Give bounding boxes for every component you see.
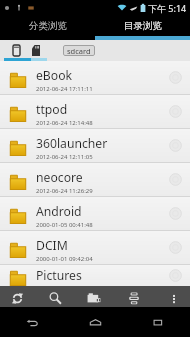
staticText: 2012-06-24 12:11:05 [36,153,93,161]
staticText: 2012-06-24 17:11:11 [36,85,93,93]
staticText: 2000-01-01 09:42:04 [36,255,93,263]
staticText: DCIM [36,237,68,254]
button[interactable]: SD card [27,42,44,59]
staticText: 2000-01-01 09:00:00 [36,285,93,288]
button[interactable]: 目录浏览 [95,16,190,36]
button[interactable]: More options [155,286,190,307]
staticText: ttpod [36,101,68,118]
button[interactable]: 分类浏览 [0,16,95,36]
button[interactable]: Pictures [0,265,190,286]
staticText: eBook [36,67,73,84]
staticText: neocore [36,169,83,186]
button[interactable]: sdcard [63,45,95,56]
staticText: 目录浏览 [124,20,162,32]
button[interactable]: neocore [0,163,190,196]
staticText: sdcard [67,46,91,56]
button[interactable]: New folder [75,286,113,307]
button[interactable]: eBook [0,61,190,94]
staticText: Android [36,203,82,220]
button[interactable]: Refresh [0,286,36,307]
button[interactable]: 360launcher [0,129,190,162]
staticText: 2000-01-05 00:41:48 [36,221,93,229]
button[interactable]: Sort [115,286,153,307]
button[interactable]: Internal storage [8,42,25,59]
button[interactable]: Recents [127,307,190,337]
staticText: 2012-06-24 12:14:48 [36,119,93,127]
button[interactable]: Android [0,197,190,230]
staticText: Pictures [36,267,82,284]
button[interactable]: Back [0,307,64,337]
staticText: 下午 5:14 [148,2,187,14]
button[interactable]: Search [36,286,74,307]
staticText: 360launcher [36,135,108,152]
button[interactable]: Home [64,307,127,337]
button[interactable]: DCIM [0,231,190,264]
staticText: 分类浏览 [29,20,67,32]
button[interactable]: ttpod [0,95,190,128]
staticText: 2012-06-24 11:26:29 [36,187,93,195]
